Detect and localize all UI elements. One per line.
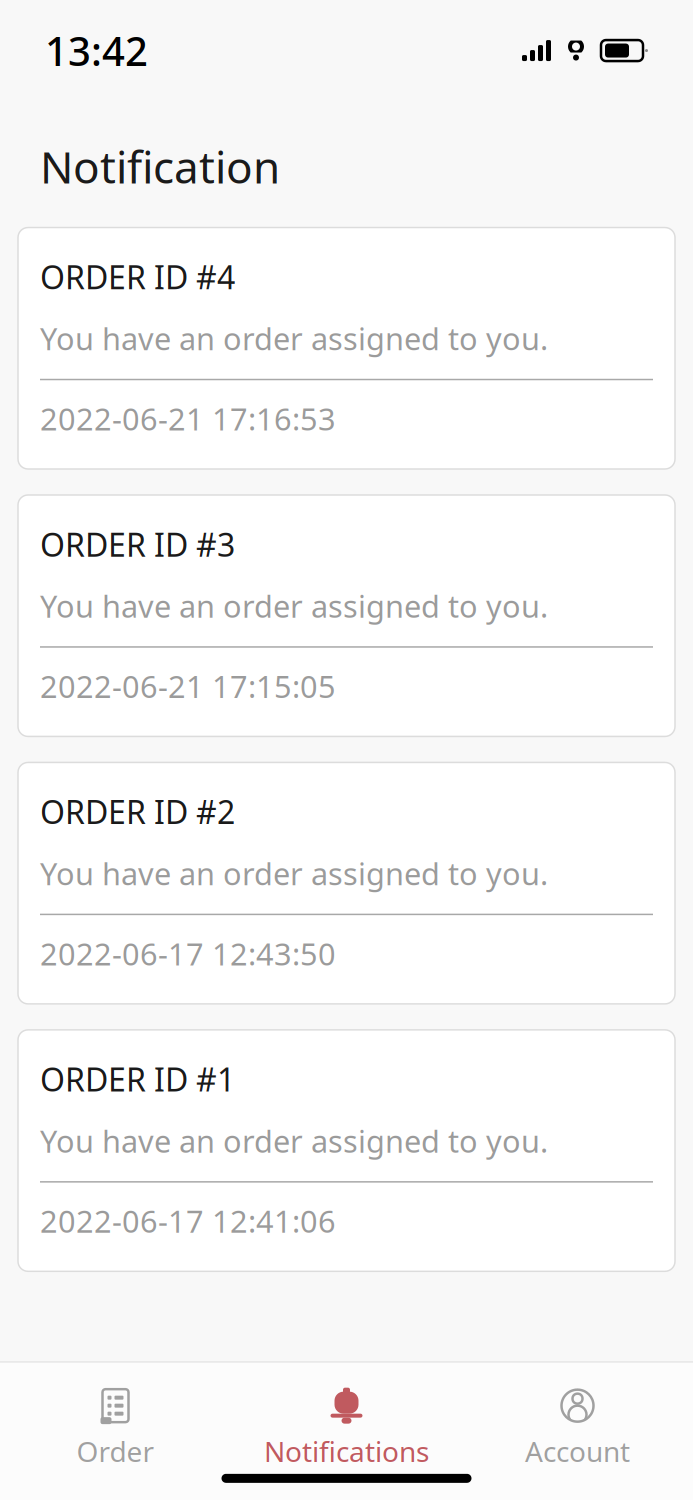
staticText: Order — [76, 1433, 154, 1470]
button[interactable]: Order — [0, 1385, 231, 1474]
staticText: 2022-06-21 17:16:53 — [40, 398, 336, 439]
staticText: 13:42 — [45, 24, 148, 77]
staticText: You have an order assigned to you. — [40, 1120, 548, 1161]
staticText: You have an order assigned to you. — [40, 585, 548, 626]
button[interactable]: ORDER ID #1 — [18, 1030, 675, 1271]
staticText: Notifications — [264, 1433, 429, 1470]
button[interactable]: ORDER ID #3 — [18, 495, 675, 736]
staticText: Account — [525, 1433, 630, 1470]
staticText: ORDER ID #4 — [40, 255, 235, 298]
staticText: 2022-06-21 17:15:05 — [40, 666, 336, 706]
staticText: ORDER ID #3 — [40, 523, 235, 565]
button[interactable]: Notifications — [231, 1385, 462, 1474]
staticText: You have an order assigned to you. — [40, 318, 548, 359]
staticText: ORDER ID #1 — [40, 1058, 235, 1100]
staticText: 2022-06-17 12:41:06 — [40, 1201, 336, 1241]
button[interactable]: Account — [462, 1385, 693, 1474]
button[interactable]: ORDER ID #2 — [18, 762, 675, 1004]
staticText: Notification — [40, 137, 280, 195]
button[interactable]: ORDER ID #4 — [18, 227, 675, 469]
staticText: You have an order assigned to you. — [40, 853, 548, 894]
staticText: 2022-06-17 12:43:50 — [40, 933, 336, 974]
staticText: ORDER ID #2 — [40, 790, 235, 833]
